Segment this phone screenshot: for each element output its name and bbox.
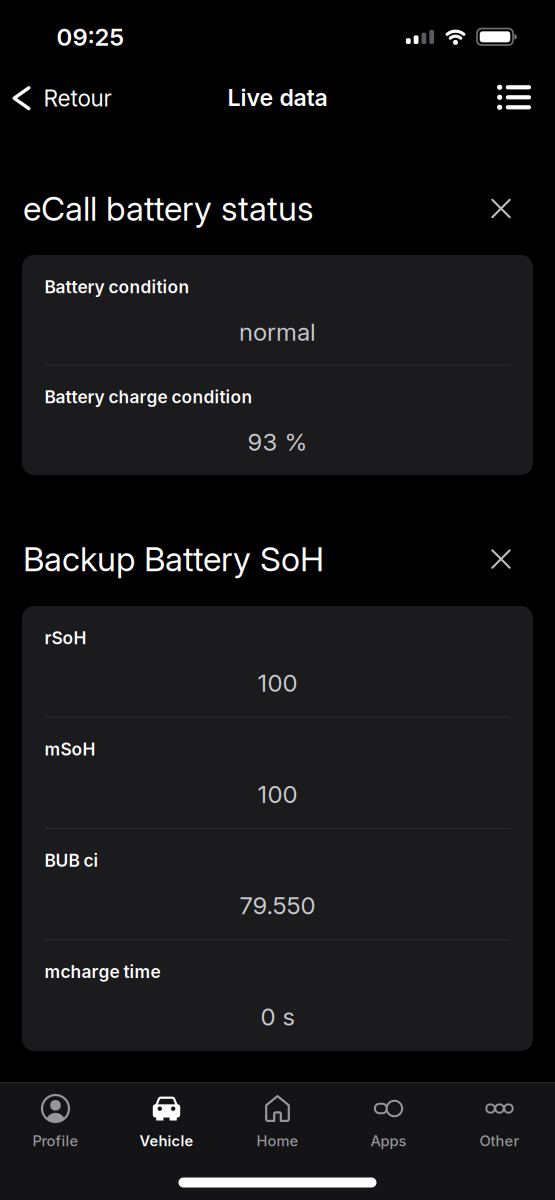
staticText: rSoH — [44, 627, 86, 648]
staticText: BUB ci — [44, 850, 98, 871]
button[interactable]: Apps — [333, 1082, 444, 1158]
button[interactable]: Back — [3, 76, 119, 120]
button[interactable]: Close — [481, 539, 521, 579]
staticText: 79.550 — [239, 891, 315, 920]
staticText: mSoH — [44, 739, 95, 760]
staticText: normal — [239, 317, 316, 346]
button[interactable]: Home — [222, 1082, 333, 1158]
staticText: Profile — [32, 1132, 78, 1150]
staticText: mcharge time — [44, 961, 160, 982]
staticText: Battery charge condition — [44, 386, 252, 407]
staticText: 0 s — [260, 1002, 294, 1031]
staticText: Apps — [370, 1132, 406, 1150]
button[interactable]: Profile — [0, 1082, 111, 1158]
staticText: Backup Battery SoH — [23, 539, 324, 579]
button[interactable]: Other — [444, 1082, 555, 1158]
button[interactable]: Close — [481, 188, 521, 228]
staticText: 100 — [257, 780, 297, 809]
staticText: 100 — [257, 668, 297, 697]
staticText: Home — [256, 1132, 298, 1150]
button[interactable]: List options — [489, 77, 539, 118]
staticText: Retour — [43, 84, 111, 112]
staticText: Vehicle — [139, 1132, 193, 1150]
staticText: 09:25 — [56, 22, 124, 51]
staticText: Live data — [227, 83, 327, 112]
staticText: 93 % — [247, 427, 307, 456]
staticText: Other — [479, 1132, 519, 1150]
staticText: eCall battery status — [23, 188, 314, 229]
button[interactable]: Vehicle — [111, 1082, 222, 1158]
staticText: Battery condition — [44, 276, 189, 297]
